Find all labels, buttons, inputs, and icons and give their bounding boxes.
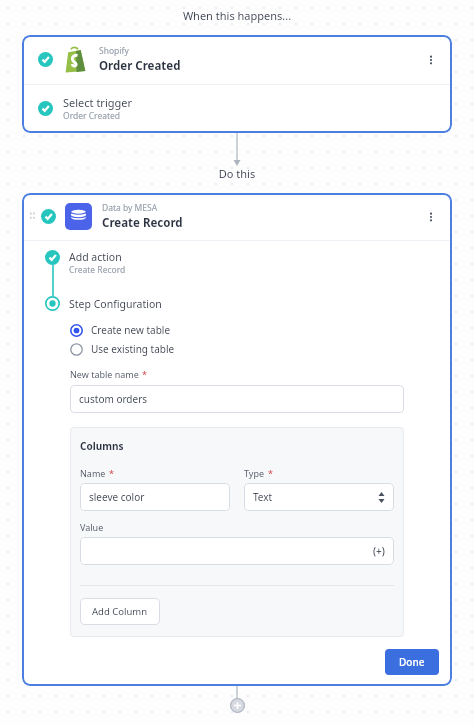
button[interactable]: sleeve color [80, 483, 230, 511]
staticText: Do this [0, 166, 474, 181]
staticText: (+) [373, 544, 385, 558]
staticText: Use existing table [91, 342, 175, 356]
staticText: sleeve color [89, 490, 145, 504]
staticText: Value [80, 521, 104, 533]
staticText: When this happens... [0, 8, 474, 23]
staticText: Done [399, 655, 425, 669]
staticText: Add action [69, 250, 122, 264]
staticText: New table name [70, 368, 139, 380]
staticText: Order Created [99, 58, 181, 74]
staticText: Order Created [63, 110, 121, 122]
button[interactable]: Create new table [70, 323, 171, 337]
button[interactable]: Add action [22, 241, 452, 296]
staticText: Create Record [102, 215, 183, 231]
button[interactable]: Done [385, 649, 439, 675]
button[interactable]: More options [420, 49, 442, 71]
staticText: Columns [80, 439, 124, 453]
staticText: Select trigger [63, 95, 133, 110]
staticText: Step Configuration [69, 297, 162, 311]
button[interactable]: Step Configuration [22, 296, 452, 311]
staticText: Type [244, 467, 265, 479]
staticText: Data by MESA [102, 202, 158, 214]
staticText: Create new table [91, 323, 171, 337]
button[interactable]: More options [420, 206, 442, 228]
button[interactable]: Select trigger [22, 85, 452, 133]
button[interactable]: Add Column [80, 598, 160, 625]
button[interactable]: (+) [80, 537, 394, 565]
staticText: Text [253, 490, 273, 504]
button[interactable]: Data by MESA [22, 193, 452, 240]
staticText: * [268, 467, 273, 479]
staticText: Name [80, 467, 106, 479]
staticText: custom orders [79, 392, 148, 406]
staticText: Create Record [69, 264, 126, 276]
staticText: Add Column [92, 605, 148, 618]
button[interactable]: Add step [230, 698, 245, 713]
staticText: * [109, 467, 114, 479]
staticText: * [142, 368, 147, 380]
button[interactable]: Use existing table [70, 342, 175, 356]
button[interactable]: Shopify [22, 35, 452, 84]
staticText: Shopify [99, 45, 129, 57]
button[interactable]: custom orders [70, 385, 404, 413]
button[interactable]: Text [244, 483, 394, 511]
